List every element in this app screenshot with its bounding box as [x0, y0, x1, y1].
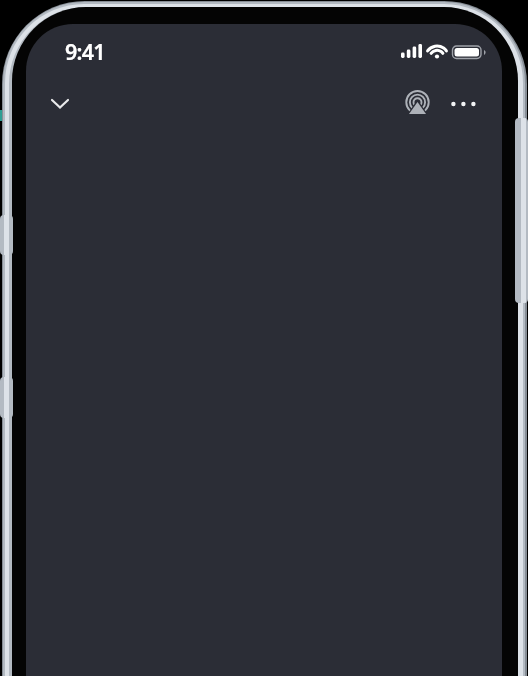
button[interactable]: [47, 90, 73, 116]
staticText: 9:41: [65, 37, 105, 66]
button[interactable]: [404, 89, 431, 116]
button[interactable]: [446, 93, 480, 113]
